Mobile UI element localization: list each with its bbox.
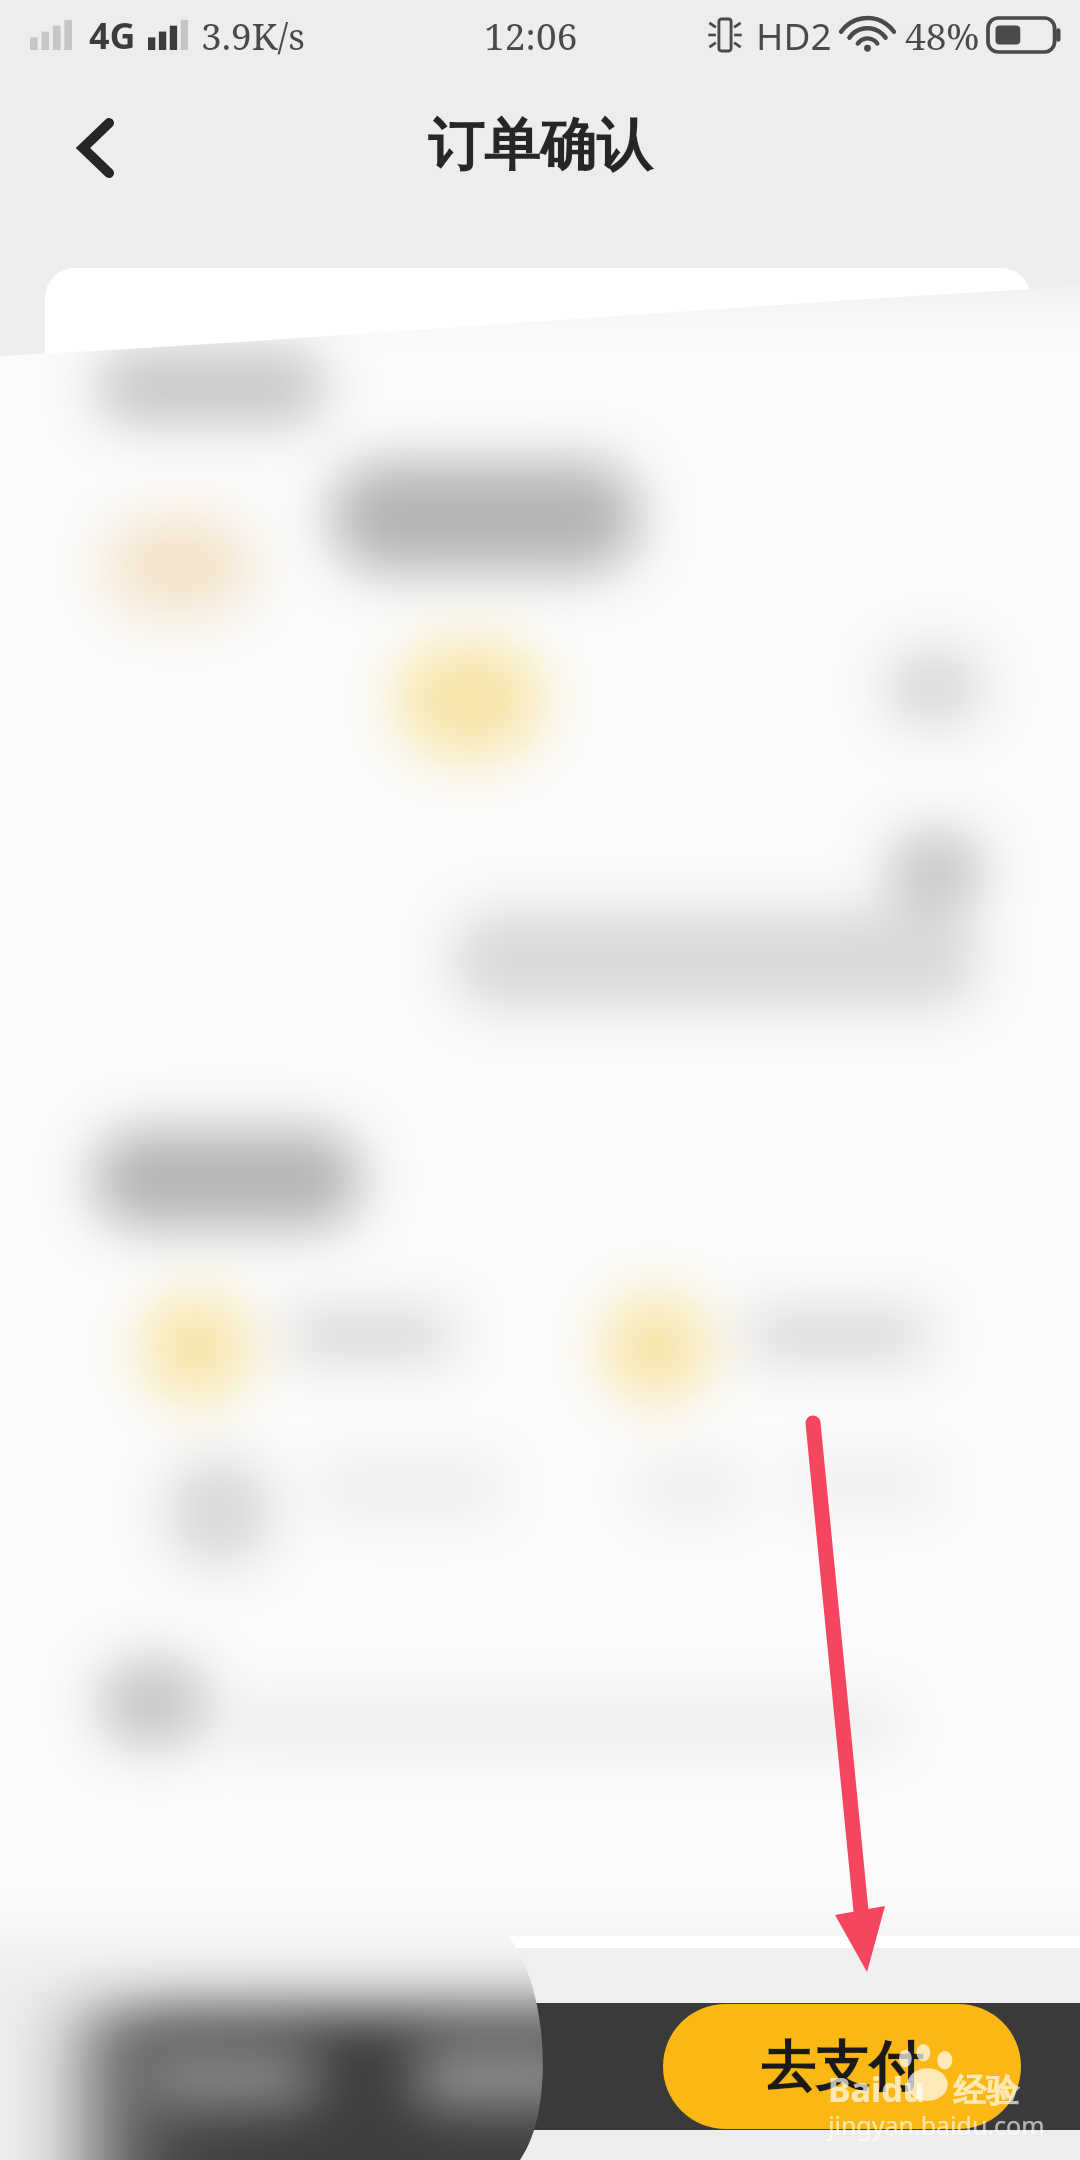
staticText: 去支付 <box>761 2033 923 2101</box>
button[interactable]: Back <box>36 88 156 208</box>
staticText: jingyan.baidu.com <box>828 2108 1045 2142</box>
staticText: Baidu <box>828 2066 925 2112</box>
staticText: 经验 <box>953 2070 1019 2112</box>
button[interactable]: 去支付 <box>663 2004 1021 2129</box>
staticText: 4G <box>89 11 136 60</box>
staticText: HD2 <box>756 10 832 60</box>
staticText: 3.9K/s <box>201 10 305 60</box>
staticText: 订单确认 <box>428 110 652 181</box>
staticText: 12:06 <box>484 10 578 60</box>
staticText: 48% <box>905 10 980 60</box>
